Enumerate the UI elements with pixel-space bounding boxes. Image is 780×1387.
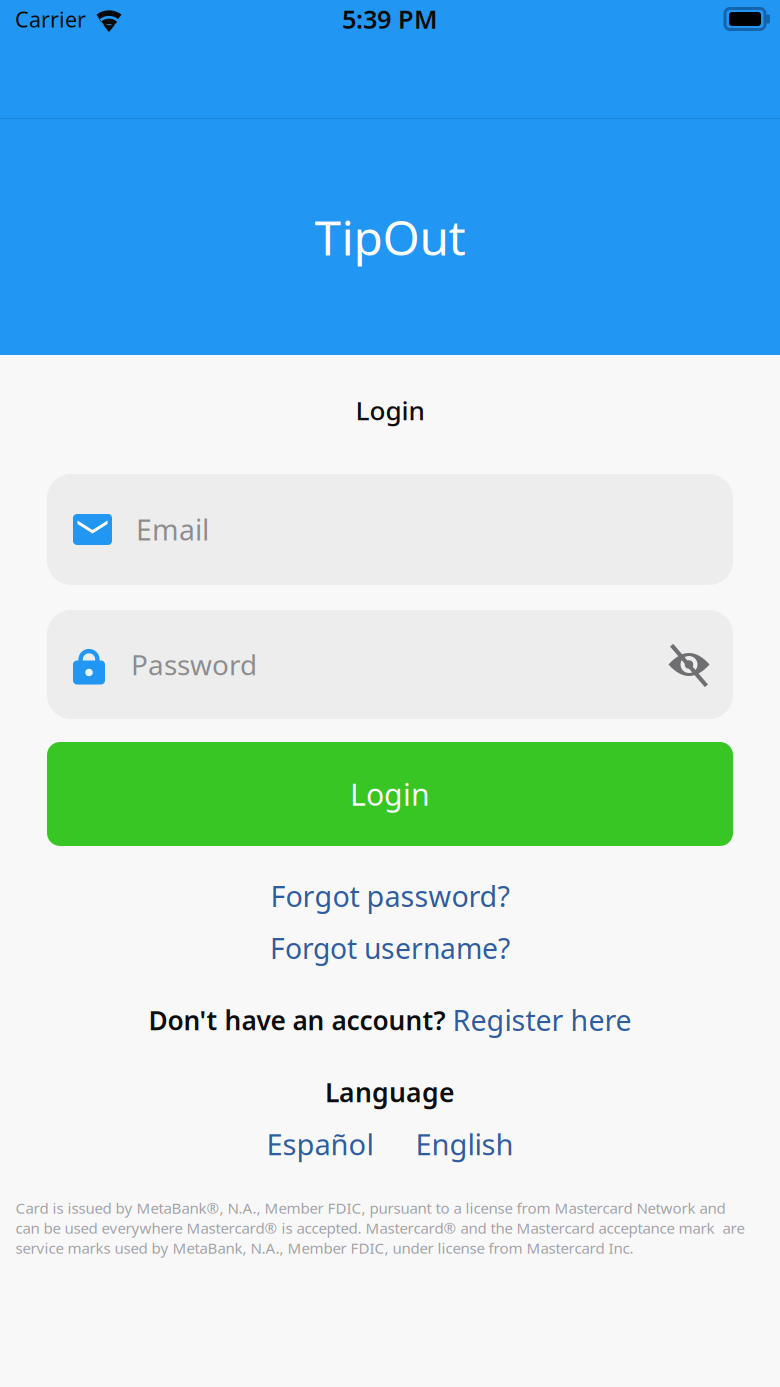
button[interactable]: English — [415, 1125, 513, 1163]
staticText: English — [415, 1125, 513, 1163]
staticText: Email — [136, 511, 209, 548]
staticText: TipOut — [314, 205, 465, 269]
staticText: Español — [266, 1125, 373, 1163]
button[interactable]: Show password — [663, 638, 715, 690]
button[interactable]: Login — [0, 742, 780, 846]
button[interactable]: Forgot password? — [270, 876, 509, 916]
staticText: Language — [325, 1074, 455, 1110]
button[interactable]: Forgot username? — [270, 928, 510, 968]
staticText: Don't have an account? — [148, 1003, 452, 1037]
staticText: Card is issued by MetaBank®, N.A., Membe… — [15, 1198, 744, 1258]
staticText: Forgot password? — [270, 877, 509, 915]
staticText: Forgot username? — [270, 929, 510, 967]
button[interactable]: Español — [266, 1125, 373, 1163]
staticText: Login — [350, 774, 430, 814]
button[interactable]: Register here — [452, 1001, 631, 1039]
staticText: Password — [131, 646, 257, 683]
staticText: 5:39 PM — [342, 2, 438, 36]
staticText: Carrier — [15, 5, 86, 33]
staticText: Register here — [452, 1001, 631, 1039]
staticText: Login — [355, 393, 424, 427]
